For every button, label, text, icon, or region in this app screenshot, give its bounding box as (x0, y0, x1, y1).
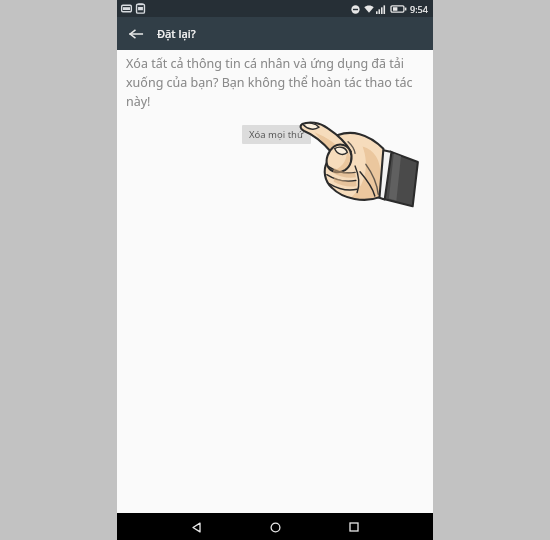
button[interactable]: Back (183, 514, 209, 540)
button[interactable]: Xóa mọi thứ (242, 125, 311, 144)
staticText: Xóa tất cả thông tin cá nhân và ứng dụng… (126, 55, 421, 110)
staticText: Đặt lại? (157, 26, 196, 41)
staticText: 9:54 (410, 3, 428, 15)
button[interactable]: Home (262, 514, 288, 540)
button[interactable]: Back (123, 21, 149, 47)
button[interactable]: Recent apps (341, 514, 367, 540)
staticText: Xóa mọi thứ (249, 128, 304, 141)
